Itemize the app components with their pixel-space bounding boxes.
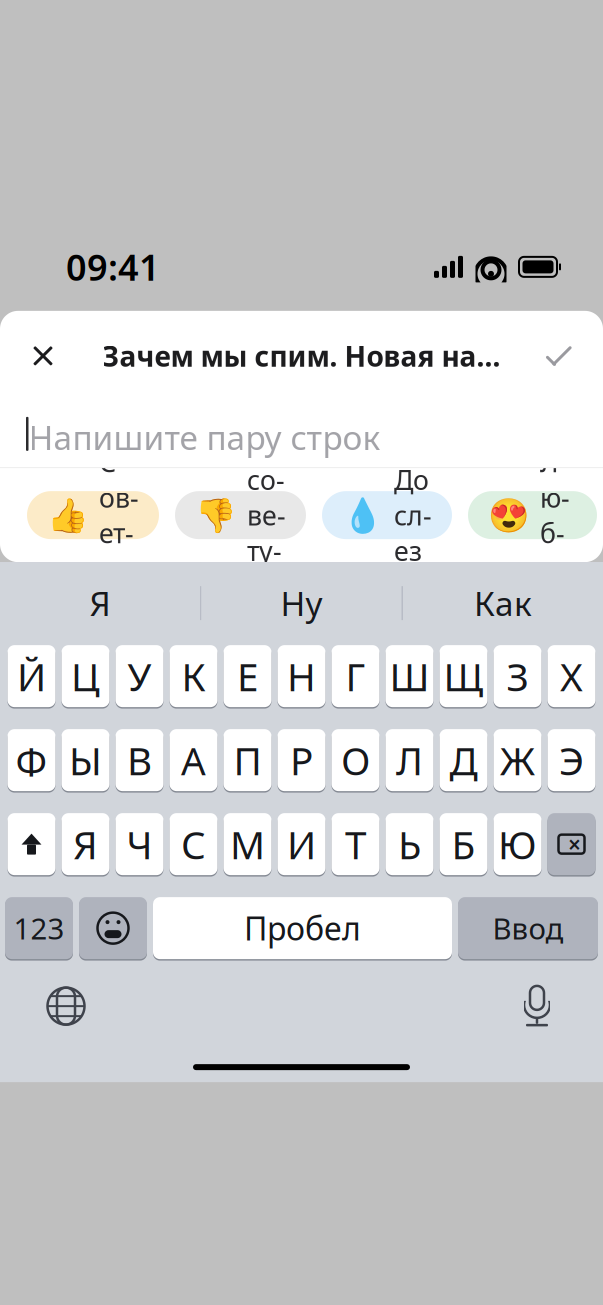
button[interactable]: Й (7, 644, 55, 708)
staticText: Н (287, 650, 316, 702)
staticText: Ввод (492, 909, 563, 948)
button[interactable]: 123 (5, 896, 73, 960)
button[interactable]: И (277, 812, 325, 876)
button[interactable]: Т (331, 812, 379, 876)
button[interactable]: Я (61, 812, 109, 876)
staticText: До слез (394, 462, 432, 568)
staticText: Ну (280, 581, 322, 625)
staticText: Г (345, 650, 365, 702)
button[interactable]: С (169, 812, 217, 876)
staticText: × (568, 829, 581, 859)
button[interactable]: Д (439, 728, 487, 792)
staticText: П (233, 734, 261, 786)
button[interactable]: Л (385, 728, 433, 792)
staticText: Ж (500, 734, 535, 786)
button[interactable]: Ну (201, 562, 401, 644)
button[interactable]: Switch keyboard (44, 984, 88, 1028)
staticText: К (181, 650, 205, 702)
staticText: Я (89, 581, 110, 625)
staticText: Й (17, 650, 46, 702)
button[interactable]: Backspace (547, 812, 595, 876)
button[interactable]: Х (547, 644, 595, 708)
button[interactable]: Р (277, 728, 325, 792)
button[interactable]: Dictate (515, 984, 559, 1028)
button[interactable]: Пробел (153, 896, 452, 960)
staticText: Б (451, 818, 475, 870)
staticText: Люблю (540, 444, 577, 586)
staticText: Е (237, 650, 258, 702)
button[interactable]: Щ (439, 644, 487, 708)
staticText: Ч (126, 818, 152, 870)
button[interactable]: 👎 (175, 491, 306, 539)
staticText: Ф (15, 734, 47, 786)
button[interactable]: М (223, 812, 271, 876)
button[interactable]: Ф (7, 728, 55, 792)
staticText: Я (73, 818, 98, 870)
staticText: Д (449, 734, 477, 786)
staticText: Ы (69, 734, 102, 786)
button[interactable]: К (169, 644, 217, 708)
staticText: Р (290, 734, 313, 786)
staticText: Как (474, 581, 532, 625)
button[interactable]: Ь (385, 812, 433, 876)
button[interactable]: Shift (7, 812, 55, 876)
staticText: В (127, 734, 152, 786)
staticText: А (181, 734, 206, 786)
staticText: 😍 (488, 496, 530, 534)
staticText: 123 (13, 909, 64, 948)
button[interactable]: О (331, 728, 379, 792)
staticText: Ц (71, 650, 100, 702)
button[interactable]: Как (403, 562, 603, 644)
button[interactable]: Е (223, 644, 271, 708)
staticText: 09:41 (66, 243, 160, 291)
staticText: Щ (443, 650, 483, 702)
staticText: Т (345, 818, 366, 870)
button[interactable]: Ю (493, 812, 541, 876)
button[interactable]: Н (277, 644, 325, 708)
staticText: Ю (498, 818, 537, 870)
staticText: Пробел (244, 907, 361, 949)
staticText: З (506, 650, 528, 702)
staticText: Ш (389, 650, 429, 702)
staticText: Ь (398, 818, 421, 870)
staticText: 👎 (195, 496, 237, 534)
button[interactable]: 😍 (468, 491, 597, 539)
staticText: М (230, 818, 265, 870)
staticText: Не советую (247, 427, 286, 604)
staticText: У (127, 650, 151, 702)
button[interactable]: Ы (61, 728, 109, 792)
staticText: Э (559, 734, 584, 786)
button[interactable]: Э (547, 728, 595, 792)
staticText: 💧 (342, 496, 384, 534)
button[interactable]: Г (331, 644, 379, 708)
button[interactable]: Ч (115, 812, 163, 876)
button[interactable]: Emoji (79, 896, 147, 960)
button[interactable]: У (115, 644, 163, 708)
button[interactable]: Б (439, 812, 487, 876)
button[interactable]: А (169, 728, 217, 792)
button[interactable]: Close (14, 329, 72, 383)
staticText: Советую (99, 444, 139, 586)
button[interactable]: З (493, 644, 541, 708)
staticText: Л (396, 734, 423, 786)
button[interactable]: Ц (61, 644, 109, 708)
button[interactable]: Done (529, 329, 589, 383)
button[interactable]: 💧 (322, 491, 452, 539)
staticText: 👍 (47, 496, 89, 534)
button[interactable]: Ш (385, 644, 433, 708)
button[interactable]: В (115, 728, 163, 792)
button[interactable]: Ж (493, 728, 541, 792)
staticText: Зачем мы спим. Новая на... (102, 337, 500, 374)
button[interactable]: П (223, 728, 271, 792)
button[interactable]: Я (0, 562, 200, 644)
button[interactable]: 👍 (27, 491, 159, 539)
staticText: О (341, 734, 370, 786)
staticText: С (181, 818, 206, 870)
staticText: И (287, 818, 316, 870)
staticText: Х (560, 650, 583, 702)
button[interactable]: Ввод (458, 896, 598, 960)
staticText: Напишите пару строк (28, 415, 380, 459)
